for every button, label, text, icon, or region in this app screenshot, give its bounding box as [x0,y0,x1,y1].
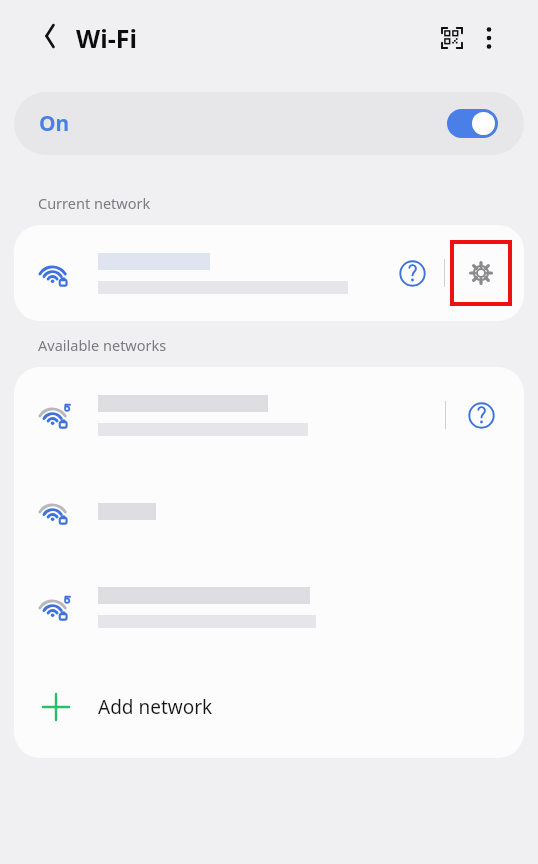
button[interactable]: More options [468,17,510,59]
staticText: Add network [98,694,213,720]
staticText: Available networks [38,335,167,355]
button[interactable] [14,559,524,655]
staticText: Current network [38,193,151,213]
other: Wi-Fi toggle [447,109,498,138]
button[interactable] [14,463,524,559]
button[interactable]: Network details help [14,367,524,463]
button[interactable]: Back [30,16,70,56]
button[interactable]: Add network [14,655,524,758]
button[interactable]: Network details help [452,386,510,444]
button[interactable]: Network details help [386,247,438,299]
button[interactable]: Scan QR code [431,17,473,59]
button[interactable]: Network details help [14,225,524,321]
button[interactable]: Network settings [450,240,512,306]
staticText: Wi-Fi [76,21,137,55]
staticText: On [39,109,70,138]
button[interactable]: On [14,92,524,155]
